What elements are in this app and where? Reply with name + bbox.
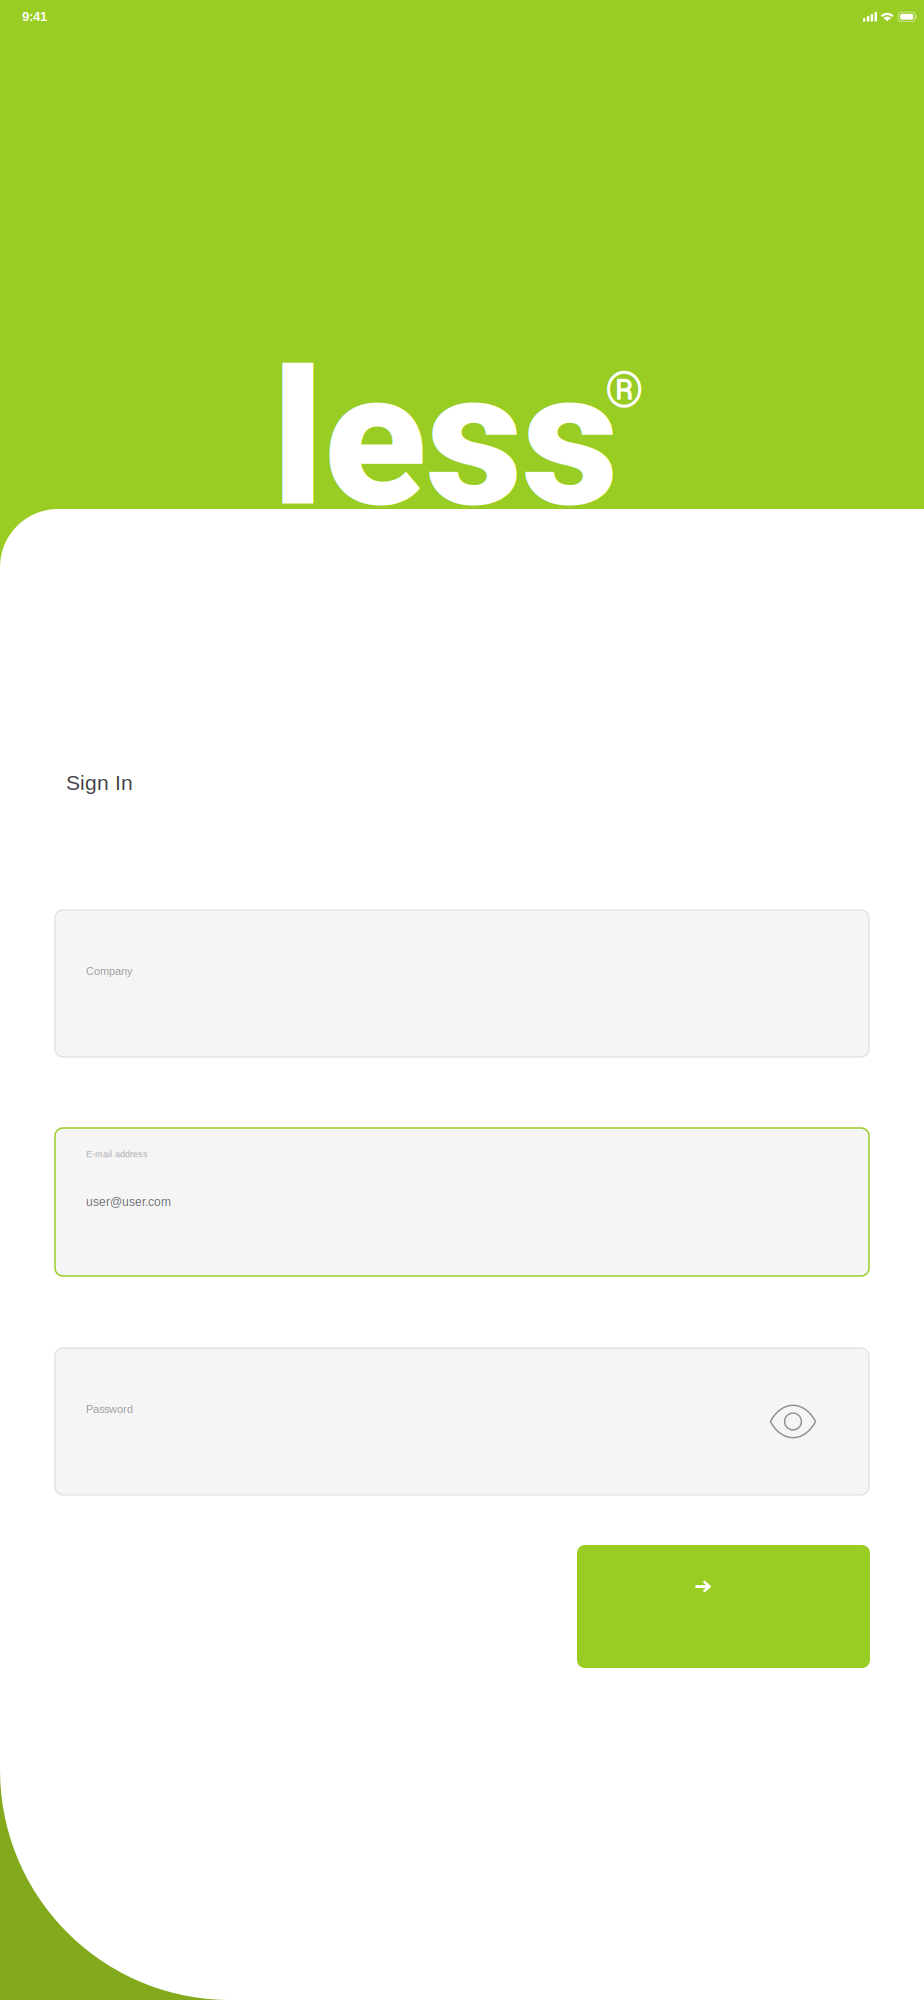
button[interactable]: Password — [55, 1348, 869, 1495]
button[interactable]: Sign in — [577, 1545, 870, 1668]
staticText: E-mail address — [86, 1149, 148, 1159]
button[interactable]: E-mail address — [55, 1128, 869, 1276]
staticText: Company — [86, 965, 132, 977]
staticText: less — [272, 329, 618, 549]
staticText: 9:41 — [22, 9, 47, 24]
staticText: ® — [605, 362, 644, 420]
staticText: Password — [86, 1403, 133, 1415]
button[interactable]: Show password — [717, 1348, 869, 1495]
staticText: Sign In — [66, 771, 133, 794]
staticText: user@user.com — [86, 1195, 171, 1208]
